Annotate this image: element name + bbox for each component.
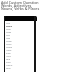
button[interactable]: How [4, 37, 37, 40]
staticText: Place [6, 52, 11, 55]
staticText: How [6, 37, 10, 40]
button[interactable]: When [4, 31, 37, 34]
staticText: Whose [6, 46, 13, 49]
button[interactable]: What [4, 28, 37, 31]
staticText: Noun [6, 55, 11, 58]
button[interactable]: Whom [4, 40, 37, 43]
staticText: Where [6, 25, 13, 28]
button[interactable]: Verb [4, 58, 37, 61]
button[interactable]: Food [4, 67, 37, 70]
button[interactable]: Who [4, 22, 37, 25]
button[interactable]: Where [4, 25, 37, 28]
button[interactable]: Noun [4, 55, 37, 58]
staticText: Whom [6, 40, 12, 43]
staticText: Name [6, 49, 12, 52]
button[interactable]: Whose [4, 46, 37, 49]
button[interactable]: Why [4, 34, 37, 37]
staticText: Which [6, 43, 12, 46]
button[interactable]: Animal [4, 64, 37, 67]
staticText: What [6, 28, 11, 31]
staticText: Food [6, 67, 11, 70]
staticText: Animal [6, 64, 13, 67]
staticText: Who [6, 22, 11, 25]
staticText: Color [6, 61, 11, 64]
button[interactable]: Color [4, 61, 37, 64]
button[interactable]: Place [4, 52, 37, 55]
staticText: Add Custom Question Words, Adjectives, N… [1, 0, 40, 11]
staticText: When [6, 31, 12, 34]
staticText: Verb [6, 58, 11, 61]
button[interactable]: Which [4, 43, 37, 46]
button[interactable]: Name [4, 49, 37, 52]
staticText: Why [6, 34, 10, 37]
